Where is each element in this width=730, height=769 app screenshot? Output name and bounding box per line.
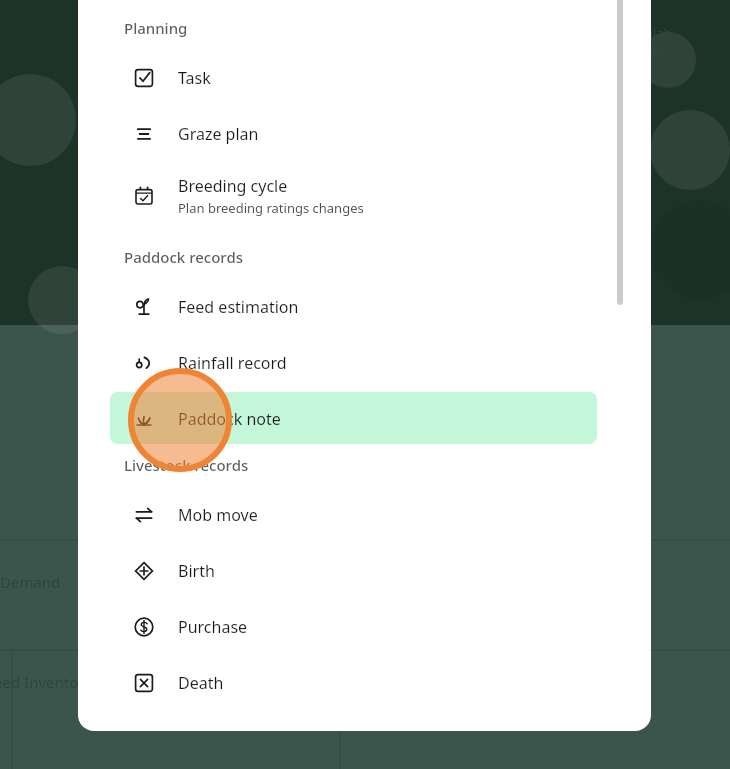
staticText: Paddock note [178, 408, 281, 430]
staticText: Breeding cycle [178, 175, 288, 197]
staticText: Task [178, 67, 211, 89]
staticText: Demand [0, 572, 61, 592]
staticText: Feed estimation [178, 296, 299, 318]
staticText: glah [645, 24, 672, 42]
button[interactable]: Rainfall record [110, 345, 597, 381]
staticText: Paddock records [124, 247, 243, 267]
button[interactable]: Paddock note [110, 401, 597, 437]
staticText: Mob move [178, 504, 258, 526]
staticText: rest [645, 40, 669, 58]
button[interactable]: Purchase [110, 609, 597, 645]
button[interactable]: Breeding cycle [110, 172, 597, 220]
staticText: Planning [124, 18, 188, 38]
button[interactable]: Mob move [110, 497, 597, 533]
button[interactable]: Feed estimation [110, 289, 597, 325]
button[interactable]: Birth [110, 553, 597, 589]
staticText: Livestock records [124, 455, 249, 475]
staticText: eed Invento [0, 672, 79, 692]
staticText: Birth [178, 560, 215, 582]
staticText: Death [178, 672, 224, 694]
staticText: Purchase [178, 616, 248, 638]
staticText: Rainfall record [178, 352, 287, 374]
button[interactable]: Task [110, 60, 597, 96]
button[interactable]: Death [110, 665, 597, 701]
button[interactable]: Graze plan [110, 116, 597, 152]
staticText: Graze plan [178, 123, 259, 145]
staticText: Plan breeding ratings changes [178, 199, 364, 217]
